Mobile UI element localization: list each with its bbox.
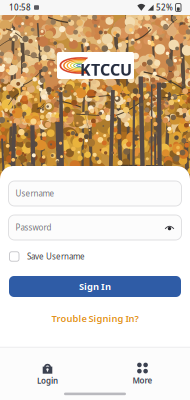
button[interactable]: Username <box>8 181 181 206</box>
staticText: More <box>132 375 152 386</box>
staticText: Login <box>37 375 58 386</box>
staticText: Trouble Signing In? <box>51 312 138 325</box>
staticText: Username <box>15 188 54 199</box>
staticText: Save Username <box>27 251 85 262</box>
button[interactable]: Password <box>8 215 181 240</box>
staticText: KTCCU <box>80 59 132 80</box>
button[interactable]: Trouble Signing In? <box>9 313 181 324</box>
button[interactable]: Save Username <box>8 251 181 262</box>
button[interactable]: Sign In <box>9 276 181 297</box>
staticText: 10:58 <box>9 2 31 13</box>
button[interactable]: Login <box>0 362 95 387</box>
staticText: Password <box>15 222 51 233</box>
button[interactable]: More <box>95 362 190 387</box>
staticText: 52% <box>156 2 173 13</box>
staticText: Sign In <box>79 280 111 293</box>
